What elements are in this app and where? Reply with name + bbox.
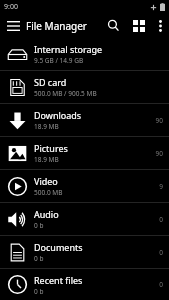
staticText: Internal storage [34, 43, 103, 55]
staticText: File Manager [26, 19, 87, 33]
staticText: 0 [159, 215, 163, 224]
staticText: 18.9 MB [34, 155, 59, 164]
staticText: Pictures [34, 142, 68, 154]
staticText: 18.9 MB [34, 122, 59, 131]
button[interactable]: SD card [0, 71, 169, 103]
staticText: 90 [155, 149, 163, 158]
button[interactable]: Documents [0, 236, 169, 268]
staticText: Documents [34, 241, 83, 253]
button[interactable]: Search [101, 13, 126, 38]
staticText: SD card [34, 76, 67, 88]
button[interactable]: Open navigation drawer [0, 13, 26, 38]
staticText: Audio [34, 208, 59, 220]
staticText: 0 b [34, 221, 44, 230]
staticText: 0 b [34, 254, 44, 263]
staticText: Recent files [34, 274, 83, 286]
staticText: Video [34, 175, 58, 187]
staticText: 9:00 [4, 2, 18, 12]
button[interactable]: Video [0, 170, 169, 202]
staticText: Downloads [34, 109, 82, 121]
button[interactable]: More options [151, 13, 169, 38]
staticText: 500.0 MB / 900.5 MB [34, 89, 97, 98]
staticText: 9 [159, 182, 163, 191]
button[interactable]: Grid view [126, 13, 151, 38]
button[interactable]: Internal storage [0, 38, 169, 70]
staticText: 0 [159, 248, 163, 257]
button[interactable]: Downloads [0, 104, 169, 136]
staticText: 0 [159, 280, 163, 289]
staticText: 9.5 GB / 14.9 GB [34, 56, 84, 65]
staticText: 0 b [34, 287, 44, 296]
button[interactable]: Pictures [0, 137, 169, 169]
staticText: 500.0 MB [34, 188, 63, 197]
staticText: 90 [155, 116, 163, 125]
button[interactable]: Audio [0, 203, 169, 235]
button[interactable]: Recent files [0, 269, 169, 300]
